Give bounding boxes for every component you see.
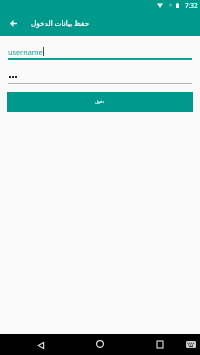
button[interactable]: Back bbox=[34, 338, 48, 352]
staticText: 7:32 bbox=[185, 1, 198, 10]
staticText: دخول bbox=[95, 99, 105, 104]
button[interactable]: Back bbox=[5, 15, 21, 31]
button[interactable]: دخول bbox=[7, 92, 193, 112]
staticText: username bbox=[8, 47, 43, 57]
button[interactable]: Home bbox=[93, 337, 107, 351]
button[interactable]: Change keyboard bbox=[184, 338, 198, 351]
staticText: حفظ بيانات الدخول bbox=[31, 18, 90, 28]
button[interactable]: Recent apps bbox=[153, 337, 167, 351]
